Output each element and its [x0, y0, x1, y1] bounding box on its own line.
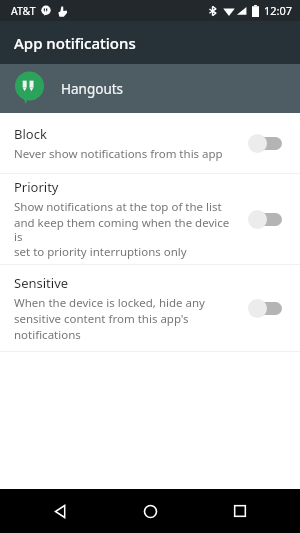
staticText: and keep them coming when the device is — [14, 215, 240, 244]
button[interactable]: Hangouts — [0, 64, 300, 113]
button[interactable]: Toggle — [248, 296, 288, 320]
staticText: notifications — [14, 327, 81, 343]
button[interactable]: Priority — [0, 174, 300, 264]
button[interactable]: Toggle — [248, 131, 288, 155]
staticText: App notifications — [14, 33, 136, 53]
button[interactable]: Back — [30, 489, 90, 533]
staticText: Never show notifications from this app — [14, 146, 223, 162]
button[interactable]: Recent apps — [210, 489, 270, 533]
button[interactable]: Toggle — [248, 207, 288, 231]
staticText: Priority — [14, 178, 59, 196]
button[interactable]: Block — [0, 113, 300, 173]
button[interactable]: Sensitive — [0, 265, 300, 351]
button[interactable]: Home — [120, 489, 180, 533]
staticText: Block — [14, 125, 47, 143]
staticText: set to priority interruptions only — [14, 244, 187, 260]
staticText: AT&T — [11, 4, 36, 18]
staticText: Show notifications at the top of the lis… — [14, 199, 222, 215]
staticText: Hangouts — [61, 80, 124, 98]
staticText: Sensitive — [14, 274, 69, 292]
staticText: sensitive content from this app's — [14, 311, 189, 327]
staticText: 12:07 — [264, 3, 293, 18]
staticText: When the device is locked, hide any — [14, 295, 205, 311]
